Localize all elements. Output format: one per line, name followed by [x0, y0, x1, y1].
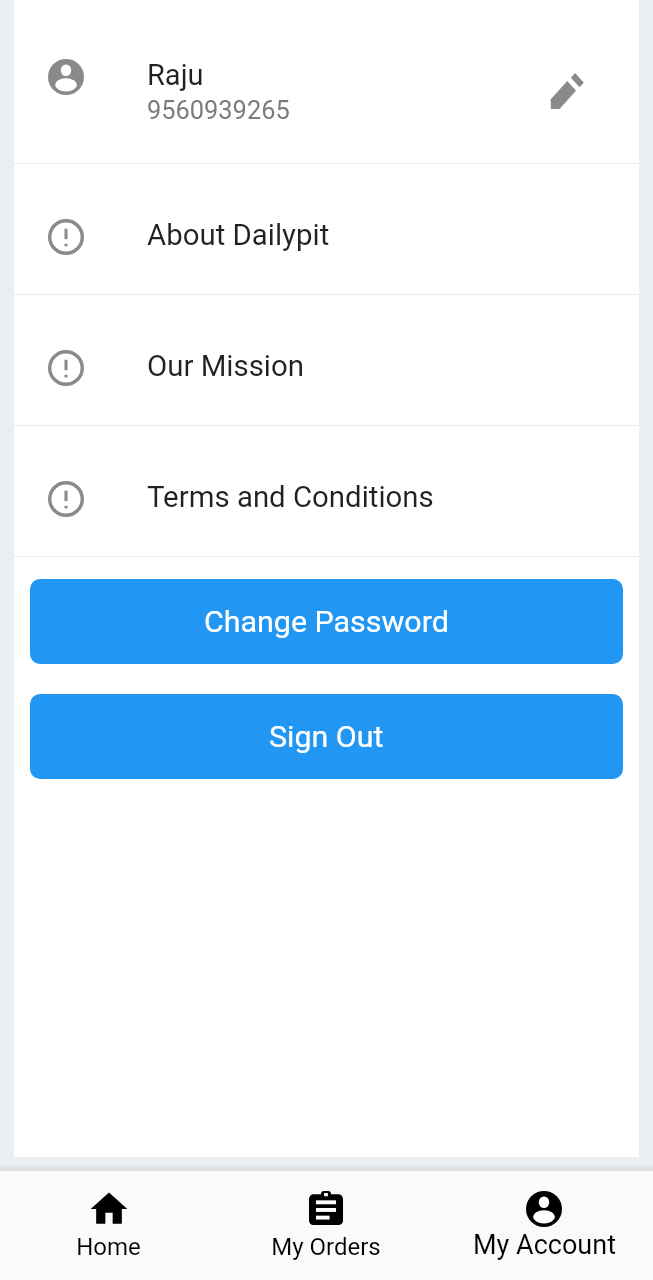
staticText: Home — [76, 1233, 141, 1261]
button[interactable]: Our Mission — [14, 295, 639, 425]
button[interactable]: Sign Out — [30, 694, 623, 779]
button[interactable]: Change Password — [30, 579, 623, 664]
button[interactable]: Edit profile — [537, 61, 597, 121]
button[interactable]: Home — [0, 1171, 217, 1280]
button[interactable]: About Dailypit — [14, 164, 639, 294]
staticText: Our Mission — [147, 349, 304, 383]
button[interactable]: Raju — [14, 0, 639, 163]
button[interactable]: My Orders — [217, 1171, 435, 1280]
staticText: 9560939265 — [147, 95, 290, 125]
staticText: About Dailypit — [147, 218, 330, 252]
staticText: My Orders — [271, 1233, 381, 1261]
staticText: My Account — [473, 1229, 616, 1261]
button[interactable]: My Account — [435, 1171, 653, 1280]
staticText: Change Password — [204, 604, 449, 640]
staticText: Terms and Conditions — [147, 480, 434, 514]
button[interactable]: Terms and Conditions — [14, 426, 639, 556]
staticText: Sign Out — [269, 719, 384, 755]
staticText: Raju — [147, 58, 204, 92]
